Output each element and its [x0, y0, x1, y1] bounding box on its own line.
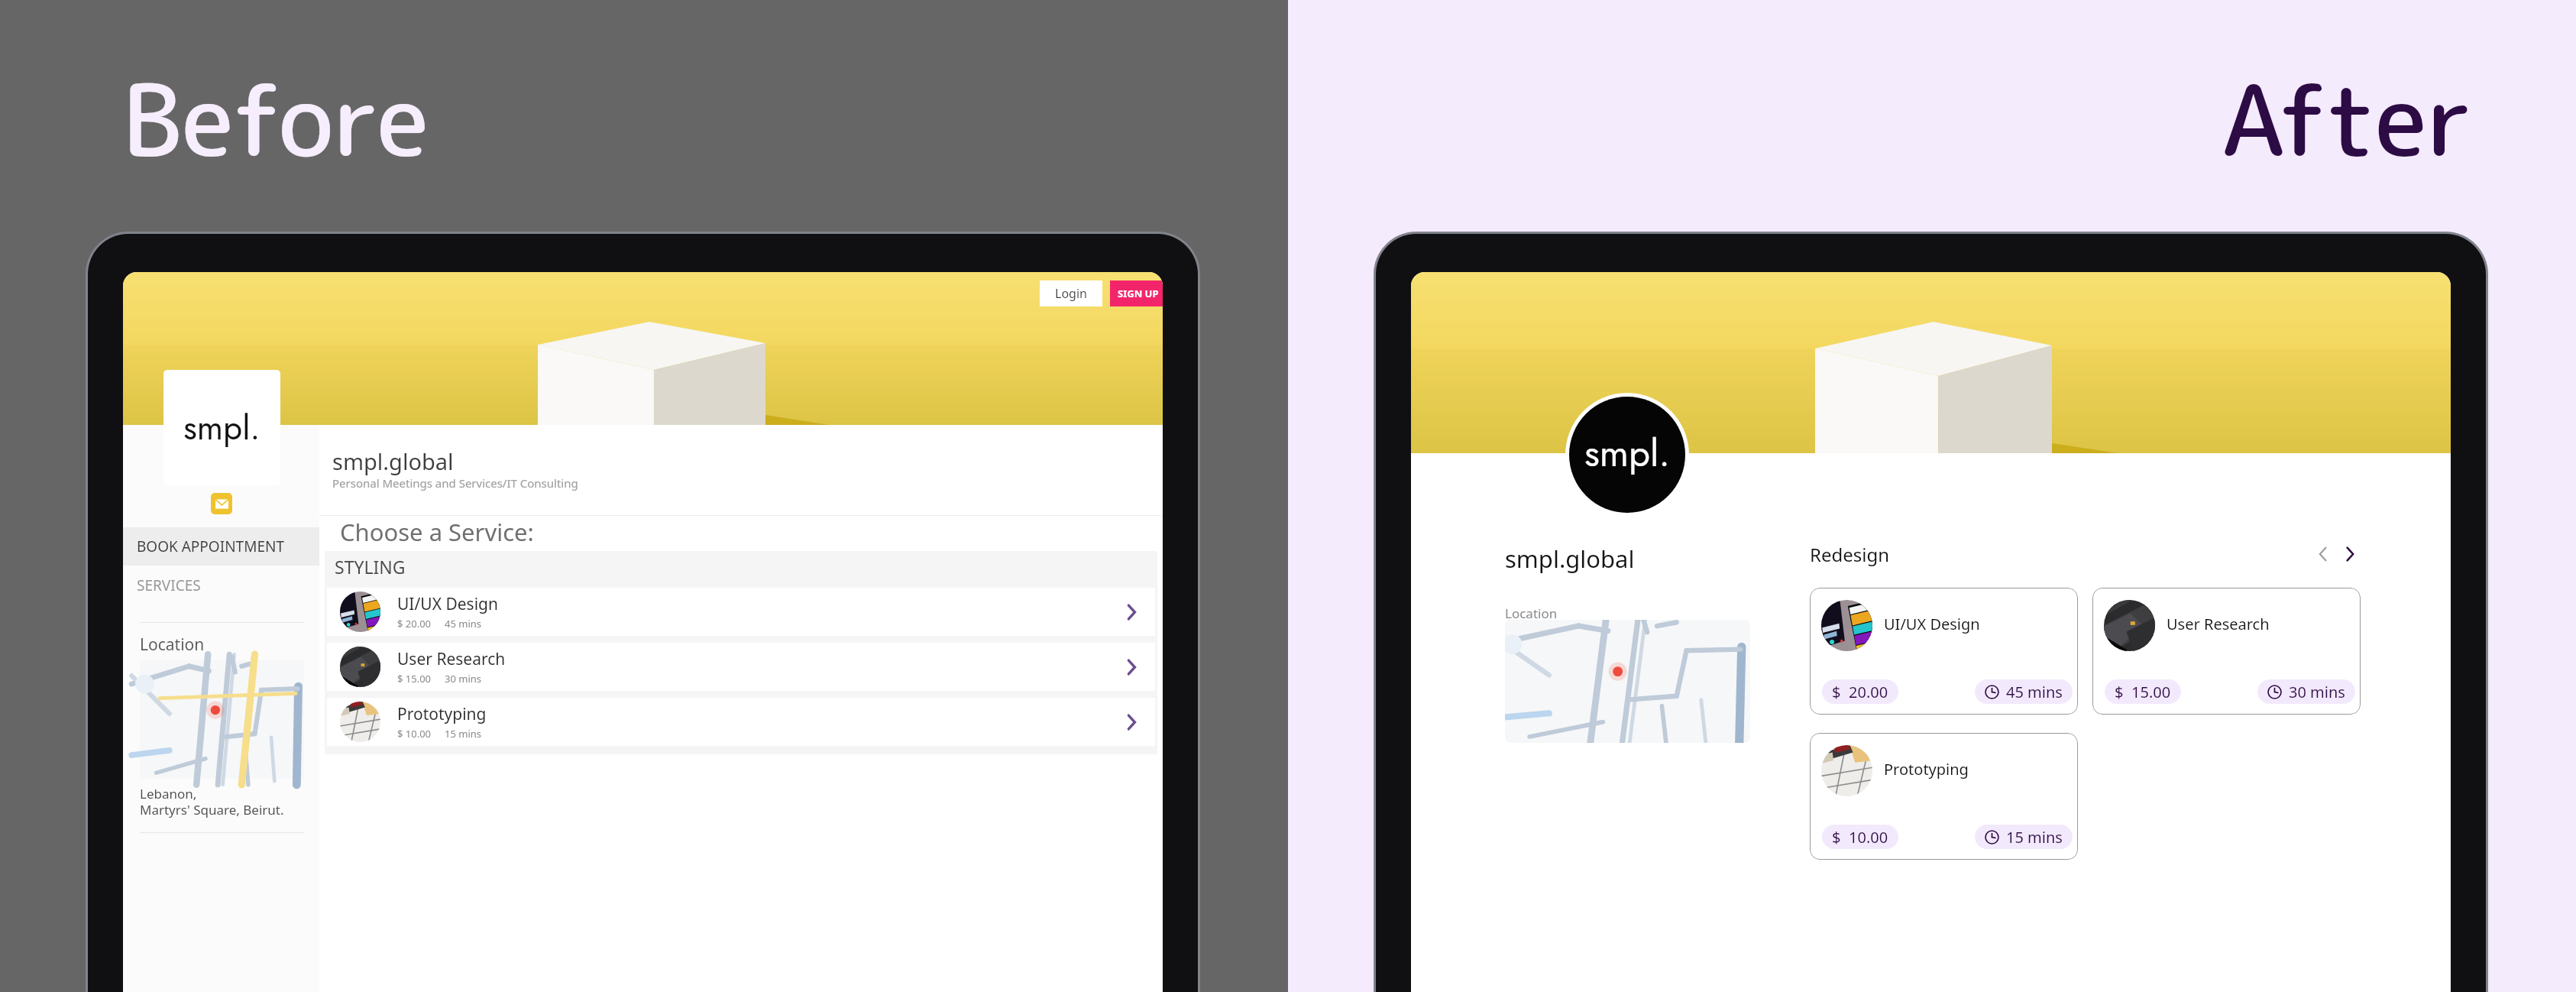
- staticText: SERVICES: [137, 575, 201, 595]
- button[interactable]: Login: [1040, 280, 1102, 306]
- staticText: After: [2222, 50, 2473, 187]
- staticText: 45 mins: [445, 617, 482, 631]
- staticText: $ 15.00: [397, 672, 432, 686]
- staticText: 30 mins: [2289, 682, 2345, 702]
- staticText: 10.00: [1849, 827, 1888, 848]
- staticText: STYLING: [335, 555, 406, 579]
- staticText: $ 20.00: [397, 617, 432, 631]
- button[interactable]: SERVICES: [123, 569, 319, 601]
- staticText: Login: [1055, 285, 1087, 302]
- staticText: $: [1832, 827, 1841, 848]
- staticText: $: [2115, 682, 2124, 702]
- staticText: Location: [1505, 605, 1558, 622]
- staticText: Location: [140, 634, 205, 656]
- staticText: $ 10.00: [397, 727, 432, 741]
- button[interactable]: SIGN UP: [1110, 280, 1163, 306]
- button[interactable]: Next: [2337, 541, 2363, 567]
- staticText: Before: [122, 50, 429, 187]
- staticText: Choose a Service:: [340, 516, 534, 548]
- staticText: smpl.: [183, 404, 261, 452]
- staticText: smpl.global: [332, 446, 454, 476]
- staticText: smpl.global: [1505, 543, 1635, 575]
- button[interactable]: Prototyping: [327, 698, 1155, 746]
- staticText: UI/UX Design: [397, 593, 498, 615]
- staticText: 15.00: [2131, 682, 2171, 702]
- button[interactable]: User Research: [327, 643, 1155, 691]
- staticText: Personal Meetings and Services/IT Consul…: [332, 475, 578, 491]
- button[interactable]: UI/UX Design: [1810, 588, 2078, 715]
- staticText: 15 mins: [445, 727, 482, 741]
- staticText: Prototyping: [1884, 759, 1969, 780]
- staticText: 20.00: [1849, 682, 1888, 702]
- button[interactable]: User Research: [2092, 588, 2361, 715]
- staticText: User Research: [397, 648, 506, 670]
- staticText: User Research: [2167, 614, 2270, 634]
- staticText: SIGN UP: [1118, 287, 1159, 300]
- staticText: Prototyping: [397, 703, 487, 725]
- button[interactable]: Previous: [2310, 541, 2336, 567]
- staticText: Redesign: [1810, 542, 1890, 567]
- staticText: 45 mins: [2006, 682, 2063, 702]
- staticText: UI/UX Design: [1884, 614, 1980, 634]
- staticText: 30 mins: [445, 672, 482, 686]
- staticText: Martyrs' Square, Beirut.: [140, 801, 284, 819]
- staticText: BOOK APPOINTMENT: [137, 537, 284, 556]
- button[interactable]: Prototyping: [1810, 733, 2078, 860]
- staticText: Lebanon,: [140, 785, 197, 802]
- staticText: $: [1832, 682, 1841, 702]
- button[interactable]: BOOK APPOINTMENT: [123, 527, 319, 566]
- staticText: 15 mins: [2006, 827, 2063, 848]
- button[interactable]: UI/UX Design: [327, 588, 1155, 636]
- staticText: smpl.: [1584, 426, 1670, 481]
